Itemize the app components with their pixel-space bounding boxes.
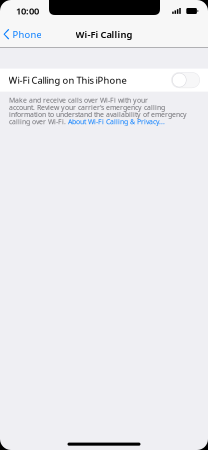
staticText: About Wi-Fi Calling & Privacy... (68, 118, 165, 125)
staticText: account. Review your carrier's emergency… (9, 104, 165, 111)
button[interactable]: About Wi-Fi Calling & Privacy... (68, 118, 165, 125)
staticText: Wi-Fi Calling (75, 28, 132, 41)
staticText: Wi-Fi Calling on This iPhone (8, 74, 126, 86)
button[interactable]: Wi-Fi Calling on This iPhone (0, 69, 208, 92)
staticText: calling over Wi-Fi. (9, 118, 68, 125)
staticText: Phone (12, 28, 41, 41)
staticText: Make and receive calls over Wi-Fi with y… (9, 97, 148, 104)
staticText: 10:00 (16, 5, 39, 17)
button[interactable]: Phone (0, 22, 48, 47)
staticText: information to understand the availabili… (9, 111, 187, 118)
